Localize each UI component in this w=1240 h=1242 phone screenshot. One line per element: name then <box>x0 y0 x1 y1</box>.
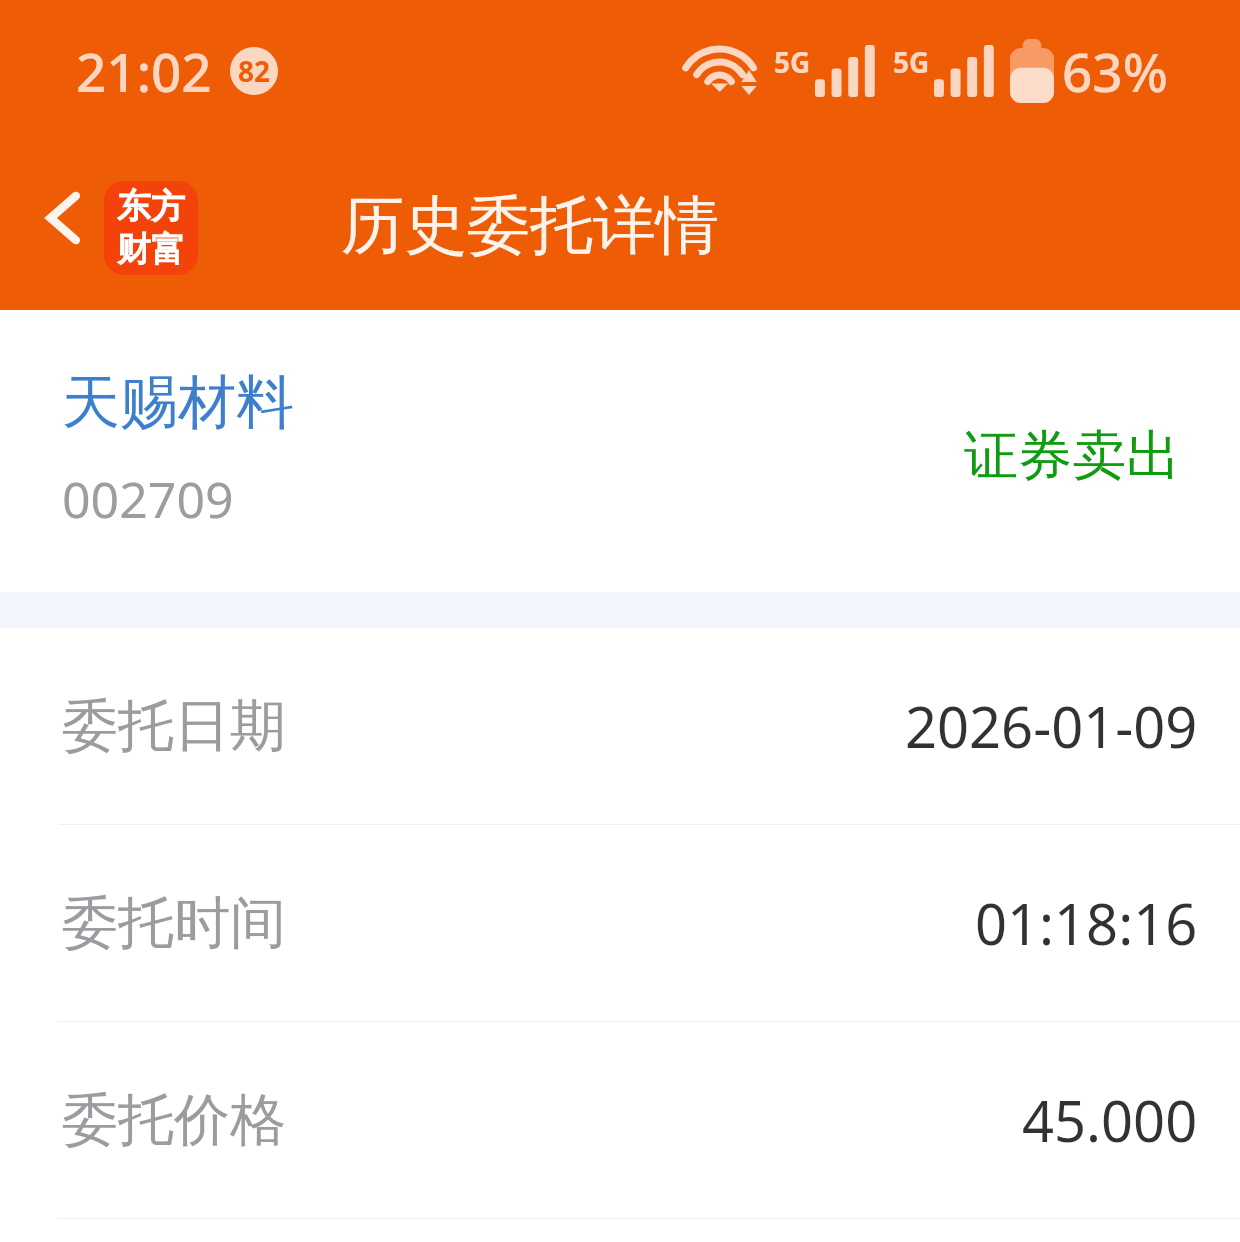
staticText: 财富 <box>117 228 185 271</box>
button[interactable]: 东方财富 <box>104 181 198 275</box>
staticText: 历史委托详情 <box>224 186 836 265</box>
button[interactable]: 委托时间 <box>0 825 1240 1021</box>
button[interactable]: 天赐材料 <box>0 310 1240 592</box>
staticText: 东方 <box>117 185 185 228</box>
staticText: 证券卖出 <box>964 422 1180 490</box>
staticText: 5G <box>893 43 930 81</box>
staticText: 45.000 <box>1022 1082 1198 1158</box>
staticText: 01:18:16 <box>975 885 1198 961</box>
staticText: 2026-01-09 <box>905 688 1198 764</box>
staticText: 天赐材料 <box>62 366 294 439</box>
staticText: 82 <box>238 52 271 90</box>
button[interactable]: 委托日期 <box>0 628 1240 824</box>
staticText: 委托日期 <box>62 691 286 762</box>
staticText: 21:02 <box>76 35 212 107</box>
button[interactable]: Back <box>18 172 110 264</box>
staticText: 委托价格 <box>62 1085 286 1156</box>
staticText: 委托时间 <box>62 888 286 959</box>
staticText: 63% <box>1062 35 1168 107</box>
staticText: 002709 <box>62 465 234 533</box>
staticText: 5G <box>774 43 811 81</box>
button[interactable]: 委托价格 <box>0 1022 1240 1218</box>
